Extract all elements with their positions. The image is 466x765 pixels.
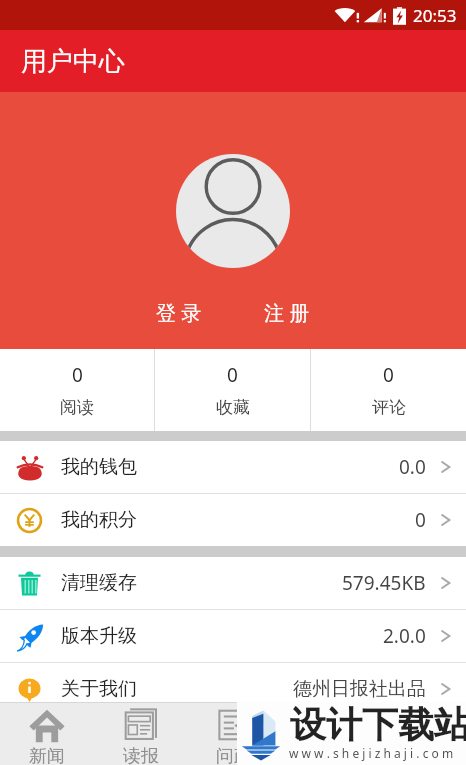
staticText: 0 xyxy=(72,362,83,388)
staticText: 评论 xyxy=(372,397,406,418)
staticText: 收藏 xyxy=(216,397,250,418)
button[interactable]: 0 xyxy=(155,349,310,431)
staticText: 新闻 xyxy=(29,745,65,765)
button[interactable]: 0 xyxy=(0,349,154,431)
button[interactable]: 关于我们 xyxy=(0,663,466,715)
button[interactable]: 清理缓存 xyxy=(0,557,466,609)
staticText: 579.45KB xyxy=(342,570,426,596)
button[interactable]: 我的积分 xyxy=(0,494,466,546)
button[interactable]: 我的 xyxy=(373,703,466,765)
button[interactable]: 问政 xyxy=(187,703,280,765)
staticText: 设计下载站 xyxy=(290,702,466,747)
staticText: 0 xyxy=(383,362,394,388)
staticText: 0.0 xyxy=(399,454,426,480)
button[interactable]: 登 录 xyxy=(144,292,214,333)
staticText: w w w . s h e j i z h a j i . c o m xyxy=(289,745,454,761)
staticText: 注 册 xyxy=(264,299,310,326)
button[interactable]: 新闻 xyxy=(0,703,94,765)
button[interactable]: 注 册 xyxy=(252,292,322,333)
staticText: 视频 xyxy=(309,745,345,765)
staticText: 我的 xyxy=(402,745,438,765)
staticText: 0 xyxy=(415,507,426,533)
staticText: 问政 xyxy=(216,745,252,765)
staticText: 登 录 xyxy=(156,299,202,326)
button[interactable]: 视频 xyxy=(280,703,373,765)
button[interactable]: 读报 xyxy=(94,703,187,765)
staticText: 我的积分 xyxy=(61,508,137,532)
staticText: 清理缓存 xyxy=(61,571,137,595)
staticText: 20:53 xyxy=(413,4,457,27)
staticText: 阅读 xyxy=(60,397,94,418)
staticText: 版本升级 xyxy=(61,624,137,648)
staticText: 0 xyxy=(227,362,238,388)
staticText: 我的钱包 xyxy=(61,455,137,479)
staticText: 关于我们 xyxy=(61,677,137,701)
button[interactable]: 我的钱包 xyxy=(0,441,466,493)
button[interactable]: 版本升级 xyxy=(0,610,466,662)
staticText: 德州日报社出品 xyxy=(293,677,426,701)
staticText: 2.0.0 xyxy=(383,623,426,649)
staticText: 用户中心 xyxy=(21,45,125,78)
staticText: 读报 xyxy=(123,745,159,765)
button[interactable]: 0 xyxy=(311,349,466,431)
